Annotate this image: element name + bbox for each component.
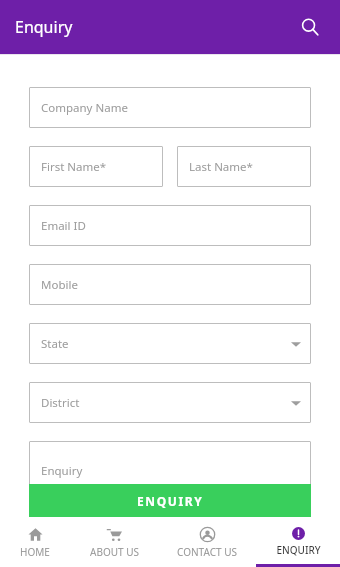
- staticText: CONTACT US: [177, 545, 237, 559]
- staticText: Email ID: [41, 218, 86, 234]
- staticText: Mobile: [41, 277, 78, 293]
- staticText: Company Name: [41, 100, 128, 116]
- staticText: ENQUIRY: [137, 493, 204, 509]
- button[interactable]: District: [29, 382, 311, 423]
- staticText: Last Name*: [189, 159, 253, 175]
- staticText: First Name*: [41, 159, 107, 175]
- staticText: Enquiry: [15, 16, 73, 38]
- staticText: State: [41, 336, 69, 352]
- staticText: District: [41, 395, 80, 411]
- button[interactable]: Last Name*: [177, 146, 311, 187]
- button[interactable]: Mobile: [29, 264, 311, 305]
- button[interactable]: Search: [294, 11, 326, 43]
- button[interactable]: CONTACT US: [158, 520, 256, 567]
- staticText: HOME: [20, 545, 50, 559]
- button[interactable]: ABOUT US: [70, 520, 158, 567]
- staticText: Enquiry: [41, 463, 83, 479]
- staticText: ABOUT US: [90, 545, 139, 559]
- button[interactable]: Enquiry: [29, 441, 311, 501]
- button[interactable]: Email ID: [29, 205, 311, 246]
- button[interactable]: HOME: [0, 520, 70, 567]
- button[interactable]: State: [29, 323, 311, 364]
- staticText: ENQUIRY: [276, 543, 321, 557]
- button[interactable]: ENQUIRY: [29, 484, 311, 517]
- button[interactable]: ENQUIRY: [256, 520, 340, 567]
- button[interactable]: First Name*: [29, 146, 163, 187]
- button[interactable]: Company Name: [29, 87, 311, 128]
